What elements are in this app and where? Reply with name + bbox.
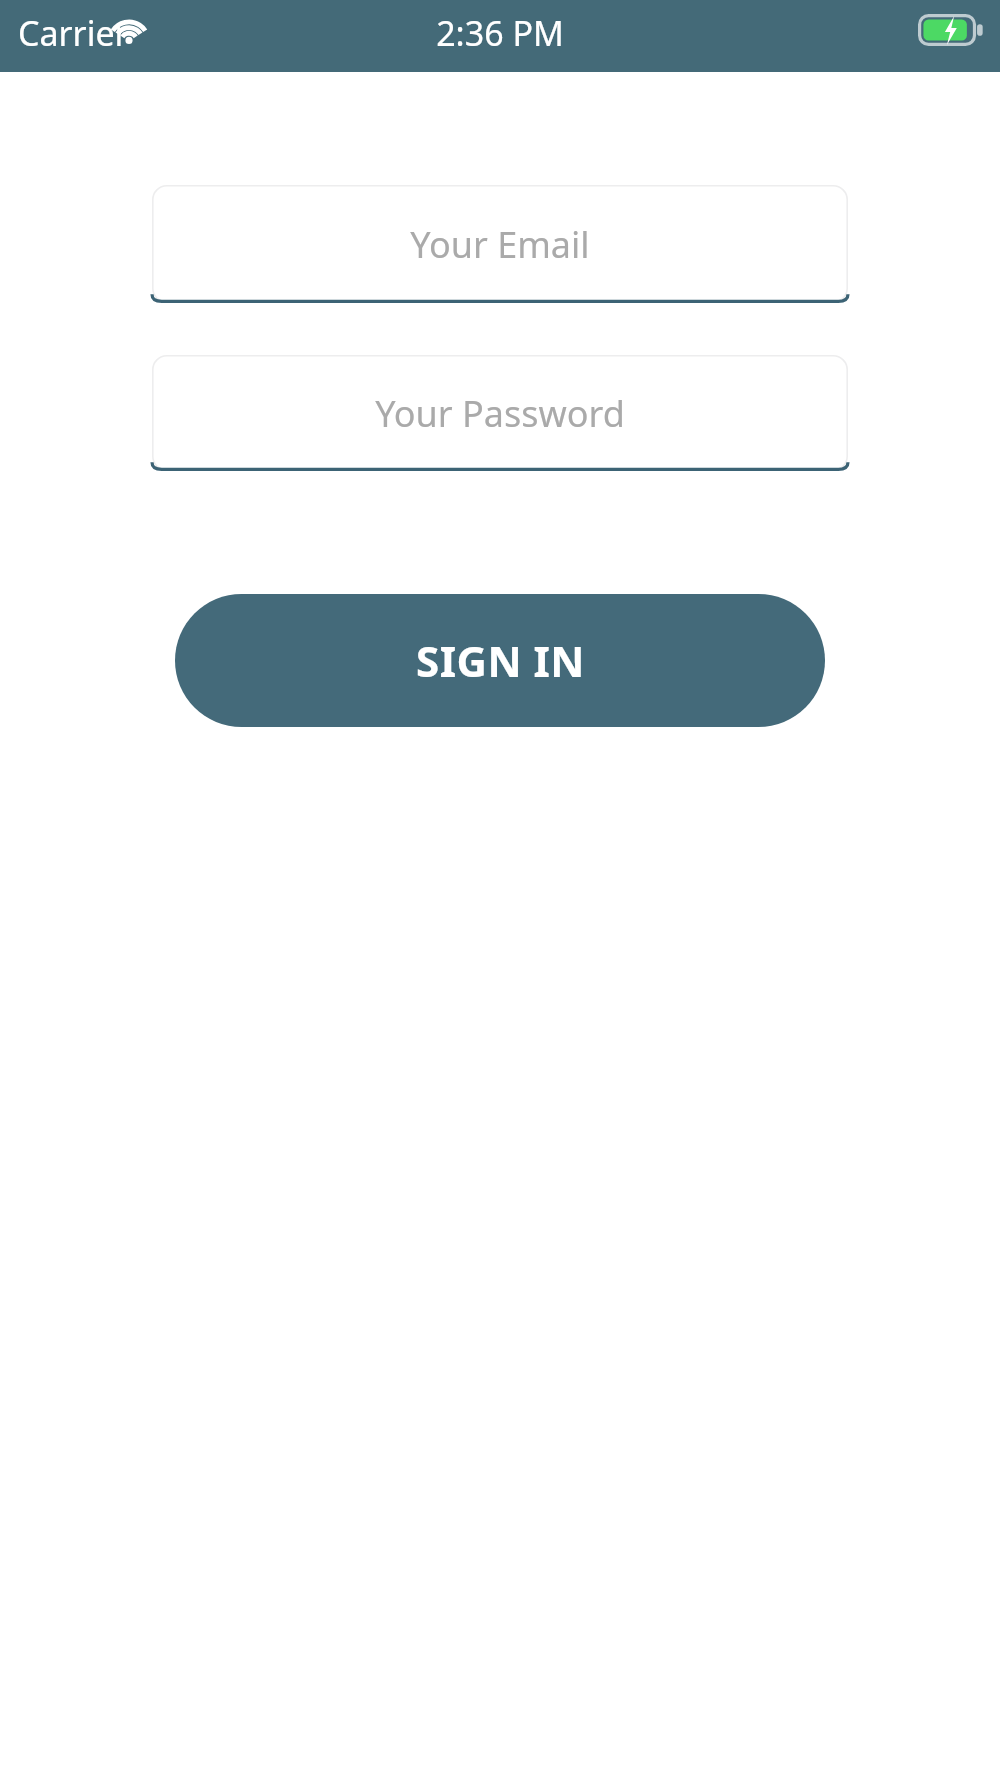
other: Battery charging <box>918 14 984 46</box>
staticText: 2:36 PM <box>436 10 564 56</box>
button[interactable]: Your Email <box>152 185 848 303</box>
button[interactable]: Your Password <box>152 355 848 471</box>
staticText: Your Password <box>375 389 625 438</box>
staticText: Your Email <box>410 220 590 269</box>
staticText: Carrier <box>18 10 129 56</box>
staticText: SIGN IN <box>416 632 585 689</box>
button[interactable]: SIGN IN <box>175 594 825 727</box>
other: Wi-Fi signal <box>108 12 150 46</box>
